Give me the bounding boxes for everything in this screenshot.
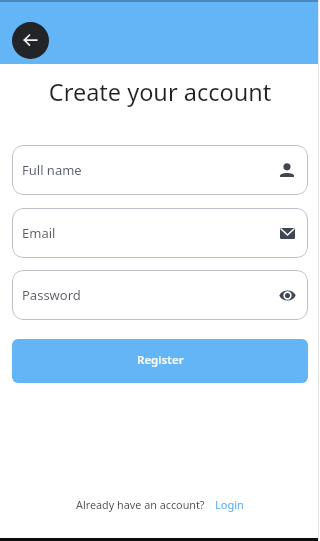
staticText: Create your account <box>0 76 320 108</box>
button[interactable]: Password <box>12 270 308 320</box>
button[interactable]: Back <box>12 22 49 59</box>
button[interactable]: Email <box>278 224 296 242</box>
button[interactable]: Show password <box>278 286 296 304</box>
staticText: Already have an account? <box>76 497 205 512</box>
staticText: Full name <box>22 161 82 179</box>
staticText: Login <box>215 497 244 512</box>
button[interactable]: Register <box>12 339 308 383</box>
staticText: Email <box>22 224 56 242</box>
staticText: Register <box>137 352 184 368</box>
button[interactable]: Email <box>12 208 308 258</box>
button[interactable]: Full name <box>278 161 296 179</box>
staticText: Password <box>22 286 81 304</box>
button[interactable]: Login <box>215 497 244 512</box>
button[interactable]: Full name <box>12 145 308 195</box>
